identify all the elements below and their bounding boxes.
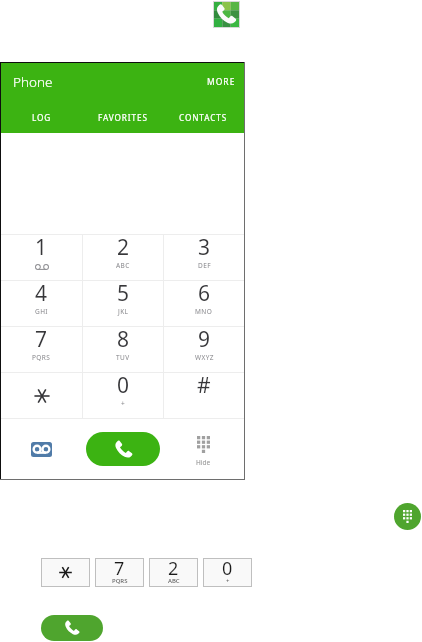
staticText: 0 <box>117 371 130 400</box>
button[interactable]: 3 <box>164 235 244 280</box>
staticText: 2 <box>117 233 130 262</box>
button[interactable] <box>41 558 90 587</box>
button[interactable]: 0 <box>83 373 163 418</box>
staticText: LOG <box>32 112 52 123</box>
staticText: GHI <box>35 307 48 316</box>
staticText: ABC <box>168 577 180 585</box>
staticText: Phone <box>13 73 53 91</box>
staticText: FAVORITES <box>98 112 148 123</box>
button[interactable]: Voicemail <box>1 419 82 479</box>
button[interactable] <box>1 373 82 418</box>
button[interactable]: Call <box>86 432 160 466</box>
button[interactable]: LOG <box>1 101 82 133</box>
staticText: JKL <box>118 307 129 316</box>
staticText: MNO <box>195 307 213 316</box>
button[interactable]: Call <box>41 615 103 641</box>
button[interactable]: 2 <box>149 558 198 587</box>
button[interactable]: 9 <box>164 327 244 372</box>
staticText: Hide <box>196 458 211 467</box>
staticText: 5 <box>117 279 130 308</box>
staticText: 9 <box>198 325 211 354</box>
button[interactable]: 4 <box>1 281 82 326</box>
staticText: MORE <box>207 76 236 88</box>
button[interactable]: 7 <box>1 327 82 372</box>
button[interactable]: 1 <box>1 235 82 280</box>
staticText: # <box>197 371 211 400</box>
staticText: 6 <box>198 279 211 308</box>
staticText: CONTACTS <box>179 112 228 123</box>
button[interactable]: 2 <box>83 235 163 280</box>
staticText: 0 <box>222 556 233 581</box>
staticText: PQRS <box>32 353 51 362</box>
staticText: TUV <box>116 353 130 362</box>
staticText: + <box>121 399 126 408</box>
button[interactable]: 0 <box>203 558 252 587</box>
staticText: WXYZ <box>195 353 214 362</box>
staticText: PQRS <box>112 577 128 585</box>
button[interactable]: MORE <box>199 70 244 94</box>
button[interactable]: 5 <box>83 281 163 326</box>
staticText: + <box>226 577 230 585</box>
button[interactable]: Open dialpad <box>394 503 421 530</box>
button[interactable]: 7 <box>95 558 144 587</box>
button[interactable]: CONTACTS <box>163 101 244 133</box>
staticText: 8 <box>117 325 130 354</box>
button[interactable]: FAVORITES <box>82 101 163 133</box>
staticText: 4 <box>35 279 48 308</box>
staticText: 7 <box>114 556 125 581</box>
staticText: DEF <box>198 261 211 270</box>
button[interactable]: Hide dialpad <box>163 419 244 479</box>
staticText: 7 <box>35 325 48 354</box>
staticText: 3 <box>198 233 211 262</box>
staticText: ABC <box>116 261 130 270</box>
staticText: 2 <box>168 556 179 581</box>
button[interactable]: 8 <box>83 327 163 372</box>
button[interactable]: # <box>164 373 244 418</box>
staticText: 1 <box>35 233 48 262</box>
button[interactable]: 6 <box>164 281 244 326</box>
